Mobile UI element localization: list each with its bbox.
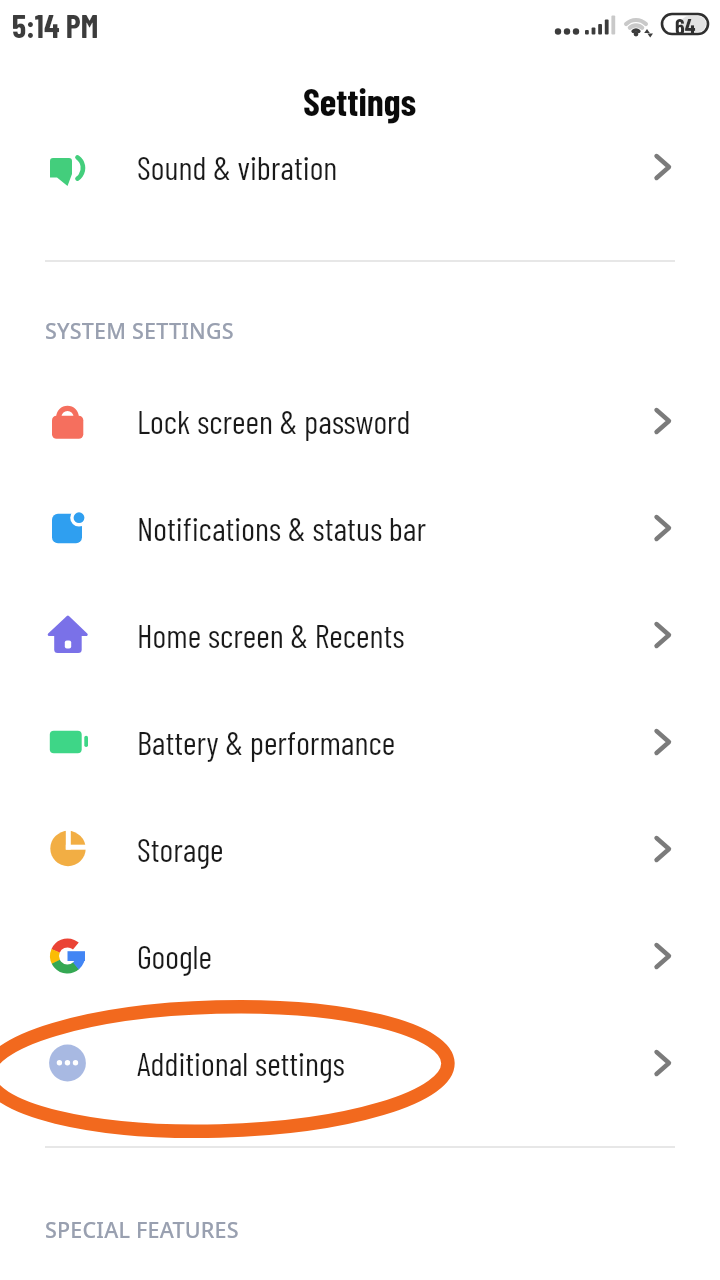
staticText: Storage — [137, 829, 224, 869]
button[interactable]: Home screen & Recents — [0, 582, 720, 688]
button[interactable]: Google — [0, 903, 720, 1009]
staticText: Lock screen & password — [137, 401, 411, 441]
staticText: Additional settings — [137, 1043, 345, 1083]
button[interactable]: Battery & performance — [0, 689, 720, 795]
button[interactable]: Sound & vibration — [0, 114, 720, 220]
button[interactable]: Storage — [0, 796, 720, 902]
staticText: SYSTEM SETTINGS — [45, 316, 234, 345]
staticText: Settings — [303, 78, 417, 124]
staticText: SPECIAL FEATURES — [45, 1215, 239, 1244]
staticText: 64 — [675, 13, 696, 35]
button[interactable]: Notifications & status bar — [0, 475, 720, 581]
staticText: Home screen & Recents — [137, 615, 405, 655]
staticText: 5:14 PM — [12, 6, 99, 44]
staticText: Notifications & status bar — [137, 508, 427, 548]
staticText: Sound & vibration — [137, 147, 338, 187]
staticText: Battery & performance — [137, 722, 396, 762]
staticText: Google — [137, 936, 212, 976]
button[interactable]: Lock screen & password — [0, 368, 720, 474]
button[interactable]: Additional settings — [0, 1010, 720, 1116]
